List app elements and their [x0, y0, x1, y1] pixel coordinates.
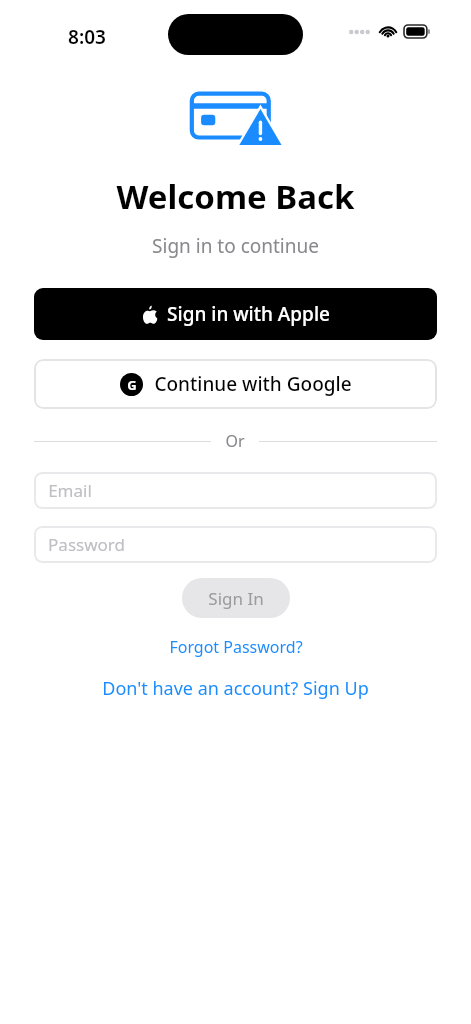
staticText: Email — [48, 479, 92, 502]
staticText: Sign in to continue — [152, 233, 319, 259]
staticText: Don't have an account? Sign Up — [102, 676, 369, 701]
button[interactable]: Email — [34, 472, 437, 509]
staticText: Welcome Back — [116, 174, 355, 219]
staticText: Sign in with Apple — [167, 301, 330, 327]
button[interactable]: Forgot Password? — [159, 631, 313, 663]
staticText: G — [127, 376, 137, 394]
button[interactable]: Don't have an account? Sign Up — [92, 671, 379, 706]
staticText: Password — [48, 533, 125, 556]
button[interactable]: G — [34, 359, 437, 409]
button[interactable]: Sign In — [182, 578, 290, 618]
button[interactable]: Sign in with Apple — [34, 288, 437, 340]
staticText: Or — [225, 430, 245, 452]
staticText: Sign In — [208, 587, 264, 610]
staticText: Forgot Password? — [169, 636, 303, 658]
staticText: Continue with Google — [154, 371, 352, 397]
staticText: 8:03 — [68, 24, 106, 50]
button[interactable]: Password — [34, 526, 437, 563]
